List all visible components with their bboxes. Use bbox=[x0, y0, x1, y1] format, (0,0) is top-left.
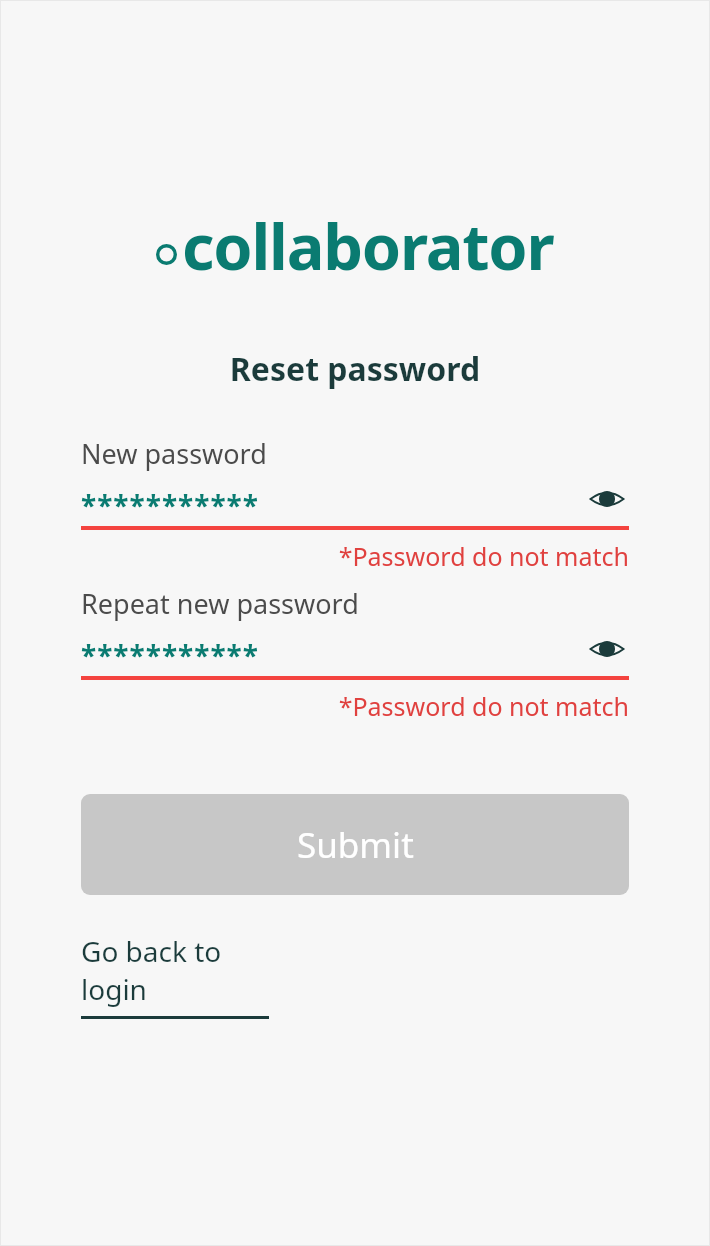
staticText: *********** bbox=[81, 486, 259, 520]
button[interactable]: Show password bbox=[585, 482, 629, 516]
button[interactable]: Submit bbox=[81, 794, 629, 895]
staticText: Go back to login bbox=[81, 932, 269, 1008]
staticText: collaborator bbox=[182, 203, 554, 289]
button[interactable]: Show password bbox=[585, 632, 629, 666]
staticText: *Password do not match bbox=[81, 539, 629, 573]
staticText: New password bbox=[81, 435, 267, 472]
button[interactable]: Go back to login bbox=[81, 932, 269, 1019]
staticText: *********** bbox=[81, 636, 259, 670]
staticText: Repeat new password bbox=[81, 585, 359, 622]
staticText: Submit bbox=[297, 821, 414, 869]
staticText: *Password do not match bbox=[81, 689, 629, 723]
staticText: Reset password bbox=[0, 347, 710, 391]
